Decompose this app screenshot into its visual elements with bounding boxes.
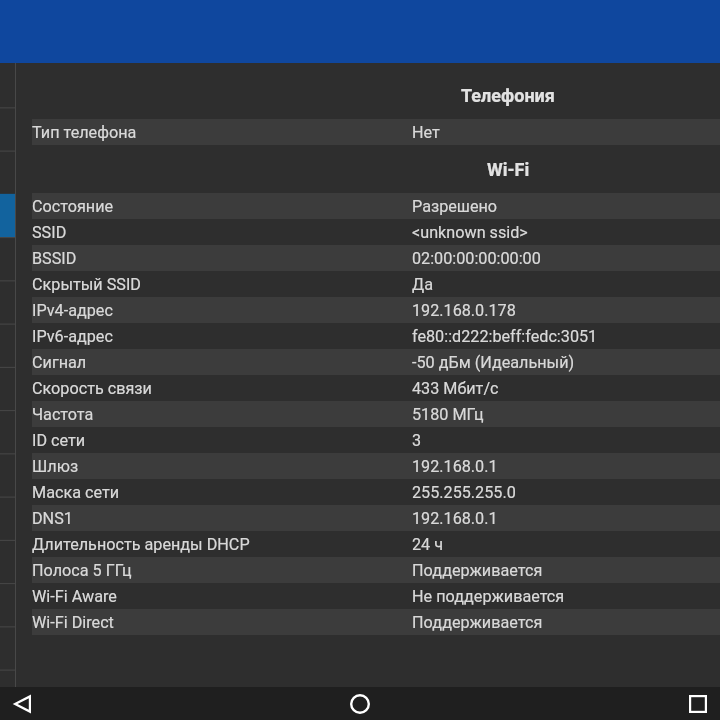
button[interactable]: IPv4-адрес [16,297,720,323]
staticText: Состояние [32,197,114,216]
button[interactable]: Скрытый SSID [16,271,720,297]
staticText: IPv4-адрес [32,301,113,320]
staticText: Да [412,275,433,294]
staticText: SSID [32,223,67,242]
staticText: -50 дБм (Идеальный) [412,353,575,372]
staticText: Разрешено [412,197,498,216]
staticText: 5180 МГц [412,405,484,424]
staticText: 192.168.0.178 [412,301,516,320]
staticText: Поддерживается [412,613,543,632]
staticText: Тип телефона [32,123,137,142]
button[interactable]: Длительность аренды DHCP [16,531,720,557]
button[interactable]: SSID [16,219,720,245]
staticText: IPv6-адрес [32,327,113,346]
button[interactable]: BSSID [16,245,720,271]
button[interactable]: Section 5 [0,235,15,278]
staticText: 255.255.255.0 [412,483,516,502]
staticText: Нет [412,123,440,142]
button[interactable]: Сигнал [16,349,720,375]
button[interactable]: Маска сети [16,479,720,505]
button[interactable]: Частота [16,401,720,427]
staticText: <unknown ssid> [412,223,528,242]
staticText: 3 [412,431,422,450]
button[interactable]: Тип телефона [16,119,720,145]
button[interactable]: IPv6-адрес [16,323,720,349]
button[interactable]: Home [344,688,376,720]
staticText: Полоса 5 ГГц [32,561,132,580]
staticText: Частота [32,405,94,424]
staticText: ID сети [32,431,86,450]
button[interactable]: Back [6,688,38,720]
staticText: DNS1 [32,509,73,528]
button[interactable]: Wi-Fi Direct [16,609,720,635]
staticText: Wi-Fi Aware [32,587,117,606]
staticText: Wi-Fi Direct [32,613,114,632]
staticText: BSSID [32,249,77,268]
button[interactable]: Section 8 [0,364,15,407]
staticText: Не поддерживается [412,587,565,606]
button[interactable]: Полоса 5 ГГц [16,557,720,583]
button[interactable]: Скорость связи [16,375,720,401]
button[interactable]: Section 13 [0,579,15,622]
button[interactable]: Состояние [16,193,720,219]
staticText: 192.168.0.1 [412,509,498,528]
staticText: 02:00:00:00:00:00 [412,249,541,268]
staticText: Поддерживается [412,561,543,580]
button[interactable]: DNS1 [16,505,720,531]
button[interactable]: Section 9 [0,407,15,450]
staticText: fe80::d222:beff:fedc:3051 [412,327,598,346]
staticText: Wi-Fi [487,159,530,180]
staticText: 192.168.0.1 [412,457,498,476]
staticText: 433 Мбит/с [412,379,499,398]
staticText: Длительность аренды DHCP [32,535,250,554]
staticText: Скрытый SSID [32,275,141,294]
button[interactable]: Wi-Fi Aware [16,583,720,609]
staticText: Скорость связи [32,379,152,398]
staticText: Маска сети [32,483,120,502]
button[interactable]: ID сети [16,427,720,453]
staticText: 24 ч [412,535,444,554]
button[interactable]: Section 4 [0,192,15,235]
staticText: Шлюз [32,457,79,476]
button[interactable]: Recent apps [682,688,714,720]
button[interactable]: Section 15 [0,665,15,687]
button[interactable]: Section 12 [0,536,15,579]
button[interactable]: Шлюз [16,453,720,479]
staticText: Сигнал [32,353,87,372]
staticText: Телефония [461,85,555,106]
